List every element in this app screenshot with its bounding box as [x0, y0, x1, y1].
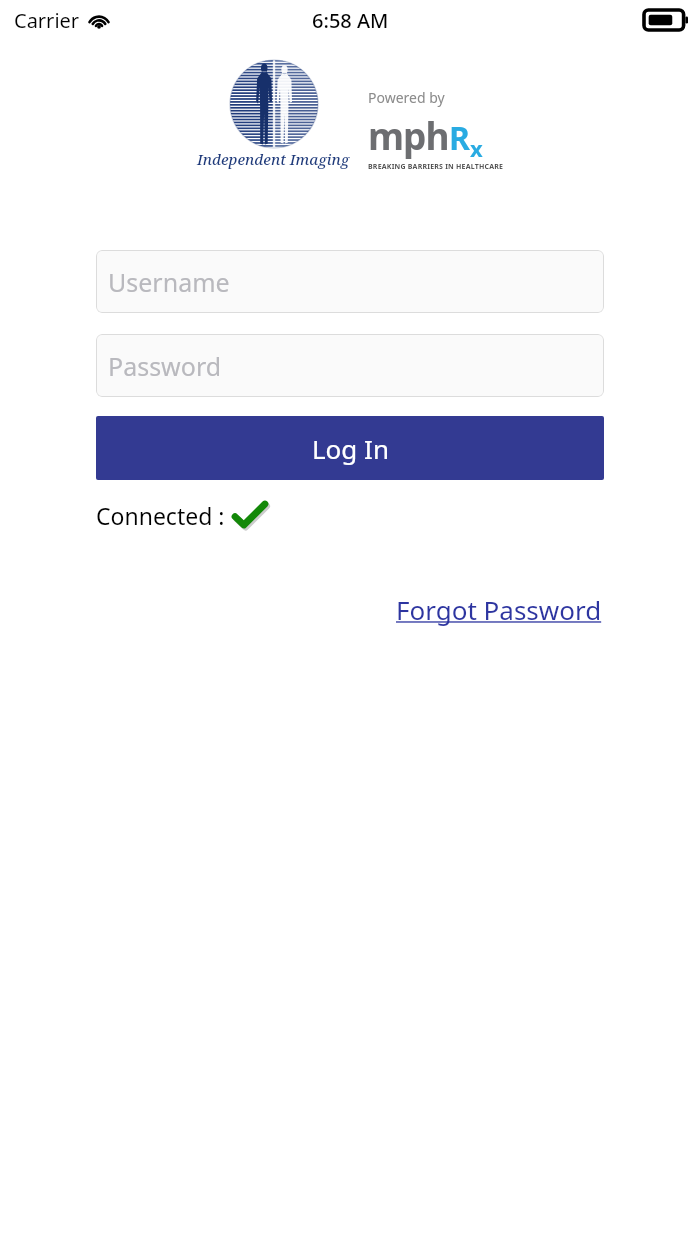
staticText: Log In — [312, 431, 389, 466]
button[interactable]: Log In — [96, 416, 604, 480]
button[interactable]: Forgot Password — [394, 590, 604, 629]
staticText: mph — [368, 110, 449, 160]
staticText: BREAKING BARRIERS IN HEALTHCARE — [368, 162, 504, 172]
staticText: x — [470, 133, 483, 163]
staticText: Forgot Password — [396, 592, 602, 627]
staticText: Powered by — [368, 88, 445, 107]
staticText: Connected : — [96, 500, 225, 531]
staticText: Password — [108, 349, 222, 383]
button[interactable]: Password — [96, 334, 604, 397]
staticText: Username — [108, 265, 230, 299]
staticText: Independent Imaging — [197, 149, 350, 169]
staticText: 6:58 AM — [312, 7, 389, 34]
button[interactable]: Username — [96, 250, 604, 313]
staticText: Carrier — [14, 7, 80, 34]
staticText: R — [449, 116, 470, 160]
